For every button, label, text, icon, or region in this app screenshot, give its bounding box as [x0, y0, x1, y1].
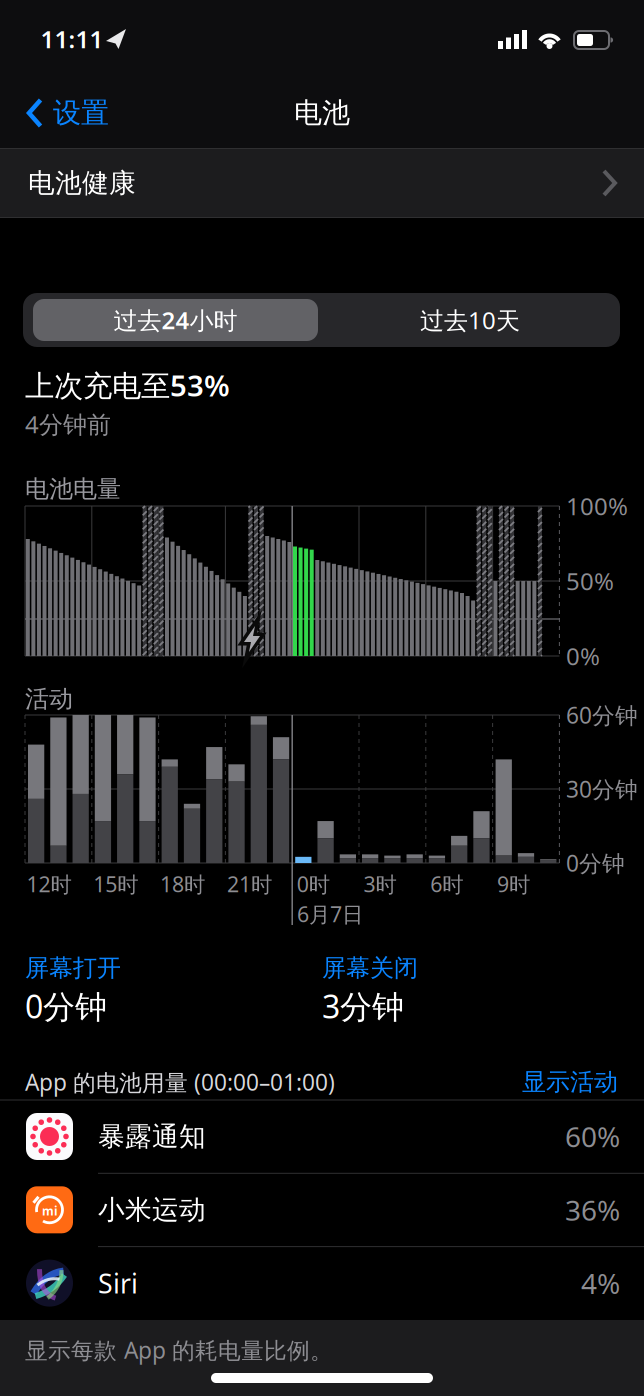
- staticText: 0分钟: [25, 985, 107, 1027]
- button[interactable]: 过去24小时: [33, 299, 318, 341]
- button[interactable]: mi: [0, 1173, 644, 1246]
- staticText: 18时: [160, 870, 205, 898]
- staticText: 过去10天: [420, 304, 520, 336]
- button[interactable]: 显示活动: [522, 1067, 618, 1097]
- staticText: 11:11: [40, 23, 103, 55]
- staticText: App 的电池用量 (00:00–01:00): [25, 1067, 335, 1097]
- staticText: 9时: [497, 870, 530, 898]
- staticText: 设置: [53, 96, 109, 130]
- staticText: 3时: [363, 870, 396, 898]
- staticText: 过去24小时: [113, 304, 237, 336]
- staticText: 电池电量: [25, 474, 121, 504]
- staticText: 电池: [294, 96, 350, 130]
- staticText: Siri: [98, 1265, 138, 1301]
- staticText: mi: [42, 1203, 58, 1219]
- staticText: 60%: [565, 1118, 620, 1155]
- staticText: 显示活动: [522, 1067, 618, 1097]
- staticText: 12时: [26, 870, 71, 898]
- staticText: 上次充电至53%: [25, 365, 230, 404]
- staticText: 50%: [566, 565, 614, 597]
- staticText: 暴露通知: [98, 1120, 206, 1153]
- staticText: 36%: [565, 1191, 620, 1228]
- staticText: 电池健康: [28, 167, 136, 199]
- staticText: 0时: [297, 870, 330, 898]
- staticText: 6月7日: [297, 900, 363, 928]
- staticText: 0分钟: [566, 848, 625, 878]
- staticText: 屏幕关闭: [322, 953, 418, 983]
- staticText: 3分钟: [322, 985, 404, 1027]
- staticText: 0%: [566, 640, 600, 672]
- button[interactable]: 返回设置: [27, 83, 131, 143]
- staticText: 100%: [566, 490, 628, 522]
- staticText: 4分钟前: [25, 408, 111, 440]
- staticText: 4%: [581, 1264, 620, 1302]
- staticText: 屏幕打开: [25, 953, 121, 983]
- staticText: 显示每款 App 的耗电量比例。: [25, 1335, 333, 1365]
- button[interactable]: Siri: [0, 1247, 644, 1320]
- button[interactable]: 电池健康: [0, 148, 644, 218]
- staticText: 活动: [25, 684, 73, 714]
- staticText: 30分钟: [566, 774, 638, 804]
- staticText: 15时: [93, 870, 138, 898]
- staticText: 小米运动: [98, 1193, 206, 1226]
- staticText: 21时: [227, 870, 272, 898]
- button[interactable]: 过去10天: [321, 299, 619, 341]
- button[interactable]: 暴露通知: [0, 1100, 644, 1173]
- staticText: 6时: [430, 870, 463, 898]
- staticText: 60分钟: [566, 700, 638, 730]
